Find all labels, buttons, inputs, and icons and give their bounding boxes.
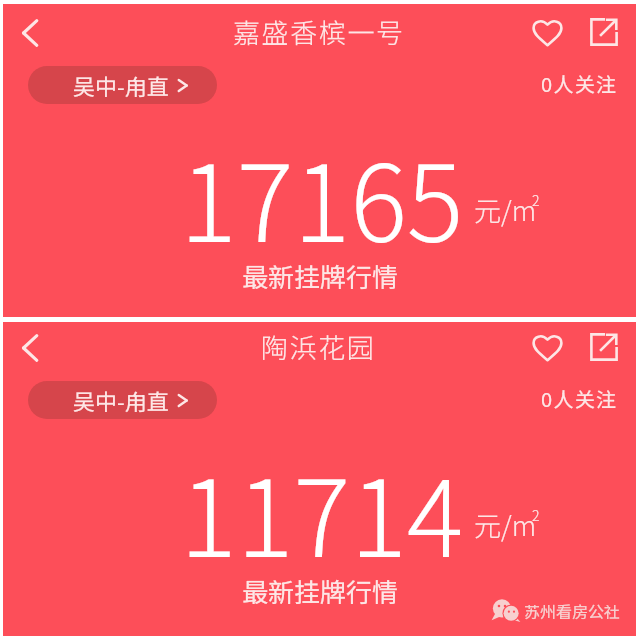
- staticText: 吴中-甪直: [73, 69, 169, 101]
- staticText: 0人关注: [541, 384, 618, 413]
- staticText: 吴中-甪直: [73, 384, 169, 416]
- staticText: 2: [532, 505, 540, 525]
- staticText: 元/m: [474, 190, 537, 229]
- button[interactable]: Favorite: [524, 9, 570, 55]
- staticText: 最新挂牌行情: [242, 572, 399, 610]
- staticText: 最新挂牌行情: [242, 257, 399, 295]
- button[interactable]: 吴中-甪直: [28, 66, 217, 104]
- button[interactable]: Share: [581, 324, 627, 370]
- staticText: 陶浜花园: [261, 327, 376, 366]
- staticText: 11714: [180, 434, 464, 587]
- button[interactable]: Back: [7, 10, 53, 56]
- button[interactable]: Share: [581, 9, 627, 55]
- staticText: 2: [532, 190, 540, 210]
- staticText: 嘉盛香槟一号: [233, 12, 405, 51]
- staticText: 苏州看房公社: [524, 599, 621, 622]
- button[interactable]: Back: [7, 325, 53, 371]
- button[interactable]: 吴中-甪直: [28, 381, 217, 419]
- staticText: 元/m: [474, 505, 537, 544]
- button[interactable]: Favorite: [524, 324, 570, 370]
- staticText: 17165: [180, 119, 464, 272]
- staticText: 0人关注: [541, 69, 618, 98]
